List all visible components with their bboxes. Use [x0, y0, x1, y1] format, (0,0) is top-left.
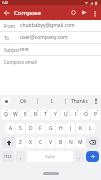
staticText: user@company.com	[20, 34, 68, 41]
staticText: L	[89, 125, 92, 132]
staticText: G	[49, 125, 53, 132]
staticText: S	[19, 125, 22, 132]
button[interactable]: B	[56, 137, 65, 148]
button[interactable]	[86, 151, 99, 162]
staticText: Compose email	[4, 59, 37, 65]
button[interactable]: U	[61, 109, 70, 120]
staticText: P	[94, 111, 98, 118]
staticText: J	[70, 125, 72, 132]
button[interactable]: T	[41, 109, 50, 120]
button[interactable]	[82, 10, 87, 15]
button[interactable]: Z	[16, 137, 25, 148]
staticText: Thanks	[71, 98, 88, 105]
staticText: test	[20, 46, 29, 53]
button[interactable]: V	[46, 137, 55, 148]
button[interactable]	[93, 11, 97, 15]
staticText: Ok	[20, 98, 27, 105]
button[interactable]: .	[75, 151, 84, 162]
staticText: 3:48	[2, 1, 8, 5]
staticText: N	[69, 139, 73, 146]
staticText: R	[34, 111, 38, 118]
button[interactable]: D	[26, 123, 35, 134]
staticText: W	[13, 111, 18, 118]
staticText: B	[59, 139, 63, 146]
button[interactable]: E	[21, 109, 30, 120]
button[interactable]: M	[76, 137, 85, 148]
staticText: I	[75, 111, 77, 118]
staticText: X	[29, 139, 32, 146]
staticText: ,	[20, 154, 22, 160]
button[interactable]: ?123	[2, 151, 14, 162]
button[interactable]: Subject	[4, 44, 101, 55]
staticText: Q	[4, 111, 8, 118]
staticText: English	[45, 155, 56, 159]
staticText: E	[24, 111, 27, 118]
button[interactable]: F	[36, 123, 45, 134]
button[interactable]: Thanks	[66, 95, 93, 107]
staticText: Z	[19, 139, 22, 146]
button[interactable]: X	[26, 137, 35, 148]
staticText: .	[79, 154, 81, 160]
staticText: K	[79, 125, 83, 132]
button[interactable]: Compose email	[4, 59, 101, 65]
button[interactable]: From	[4, 20, 101, 31]
button[interactable]: C	[36, 137, 45, 148]
staticText: T	[44, 111, 47, 118]
button[interactable]	[93, 98, 99, 104]
button[interactable]: N	[66, 137, 75, 148]
staticText: C	[39, 139, 43, 146]
button[interactable]: K	[76, 123, 85, 134]
button[interactable]: Q	[1, 109, 10, 120]
button[interactable]: I	[71, 109, 80, 120]
staticText: I	[51, 98, 53, 105]
button[interactable]: A	[6, 123, 15, 134]
button[interactable]	[2, 97, 10, 105]
staticText: ?123	[4, 154, 12, 159]
button[interactable]: P	[91, 109, 100, 120]
staticText: V	[49, 139, 53, 146]
button[interactable]	[86, 137, 99, 148]
staticText: Subject	[4, 47, 20, 53]
button[interactable]: H	[56, 123, 65, 134]
button[interactable]	[4, 10, 10, 16]
button[interactable]: W	[11, 109, 20, 120]
button[interactable]: O	[81, 109, 90, 120]
staticText: H	[59, 125, 63, 132]
button[interactable]: J	[66, 123, 75, 134]
staticText: O	[84, 111, 88, 118]
staticText: From	[4, 23, 16, 29]
button[interactable]: To	[4, 32, 101, 43]
staticText: To	[4, 35, 9, 41]
button[interactable]: I	[38, 95, 65, 107]
staticText: A	[9, 125, 13, 132]
staticText: D	[29, 125, 33, 132]
staticText: Y	[54, 111, 57, 118]
button[interactable]: S	[16, 123, 25, 134]
button[interactable]: English	[27, 151, 73, 162]
staticText: U	[64, 111, 68, 118]
button[interactable]: R	[31, 109, 40, 120]
staticText: F	[39, 125, 42, 132]
button[interactable]: ,	[16, 151, 25, 162]
button[interactable]: L	[86, 123, 95, 134]
staticText: chubbabyy@gmail.com	[20, 22, 75, 29]
button[interactable]	[2, 137, 15, 148]
staticText: Compose	[14, 9, 41, 17]
button[interactable]: Ok	[10, 95, 37, 107]
button[interactable]	[71, 10, 76, 15]
staticText: M	[78, 139, 83, 146]
button[interactable]: G	[46, 123, 55, 134]
button[interactable]: Y	[51, 109, 60, 120]
